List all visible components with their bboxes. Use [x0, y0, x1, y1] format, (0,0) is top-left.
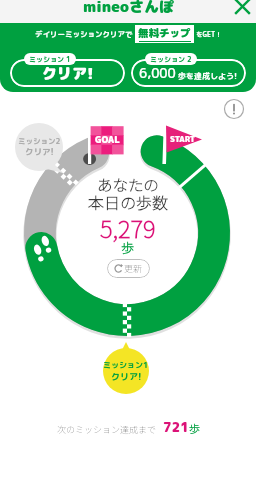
staticText: クリア! [25, 146, 54, 158]
staticText: 歩 [121, 238, 135, 257]
staticText: ミッション2 [18, 136, 61, 146]
staticText: 次のミッション達成まで [57, 423, 157, 436]
staticText: 無料チップ [138, 26, 191, 41]
staticText: デイリーミッションクリアで [35, 29, 133, 39]
staticText: ミッション1 [103, 359, 149, 370]
button[interactable]: Information [223, 98, 245, 120]
staticText: ミッション 1 [29, 54, 71, 64]
staticText: 721 [163, 418, 189, 436]
staticText: をGET！ [196, 30, 222, 39]
staticText: mineoさんぽ [83, 0, 174, 17]
staticText: 歩を達成しよう! [178, 70, 238, 81]
button[interactable]: Close [228, 0, 256, 18]
staticText: クリア! [42, 63, 94, 84]
button[interactable]: 6,000 [131, 53, 246, 87]
button[interactable]: クリア! [10, 53, 125, 87]
staticText: GOAL [95, 133, 120, 146]
staticText: 更新 [124, 262, 143, 275]
staticText: 本日の歩数 [88, 190, 169, 213]
button[interactable]: 更新 [107, 259, 150, 278]
staticText: ミッション 2 [150, 54, 192, 64]
staticText: あなたの [97, 173, 160, 195]
staticText: クリア! [111, 370, 142, 383]
staticText: START [170, 133, 196, 144]
staticText: 6,000 [139, 64, 176, 82]
staticText: 歩 [189, 420, 200, 436]
staticText: 5,279 [100, 210, 156, 245]
